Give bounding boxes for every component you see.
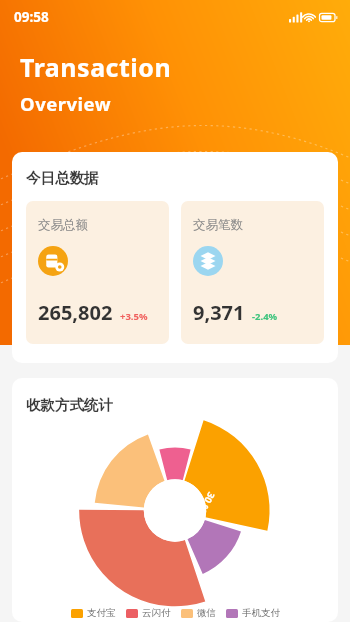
other: Transaction count bbox=[193, 246, 223, 276]
button[interactable]: 云闪付 bbox=[126, 607, 171, 619]
other: Total amount bbox=[38, 246, 68, 276]
staticText: Overview bbox=[20, 91, 112, 116]
staticText: 微信 bbox=[197, 607, 216, 619]
staticText: -2.4% bbox=[252, 310, 278, 323]
button[interactable]: 支付宝 bbox=[71, 607, 116, 619]
staticText: 交易笔数 bbox=[193, 217, 243, 233]
button[interactable]: 交易总额 bbox=[26, 201, 169, 344]
staticText: 手机支付 bbox=[242, 607, 280, 619]
staticText: 收款方式统计 bbox=[26, 396, 113, 414]
staticText: 云闪付 bbox=[142, 607, 171, 619]
button[interactable]: 交易笔数 bbox=[181, 201, 324, 344]
staticText: 09:58 bbox=[14, 8, 49, 26]
staticText: 265,802 bbox=[38, 299, 113, 326]
staticText: 交易总额 bbox=[38, 217, 88, 233]
staticText: 今日总数据 bbox=[26, 169, 99, 187]
staticText: 30 % bbox=[196, 490, 218, 515]
staticText: +3.5% bbox=[120, 310, 148, 323]
button[interactable]: 微信 bbox=[181, 607, 216, 619]
button[interactable]: 手机支付 bbox=[226, 607, 280, 619]
staticText: 支付宝 bbox=[87, 607, 116, 619]
staticText: Transaction bbox=[20, 50, 172, 84]
staticText: 9,371 bbox=[193, 299, 245, 326]
